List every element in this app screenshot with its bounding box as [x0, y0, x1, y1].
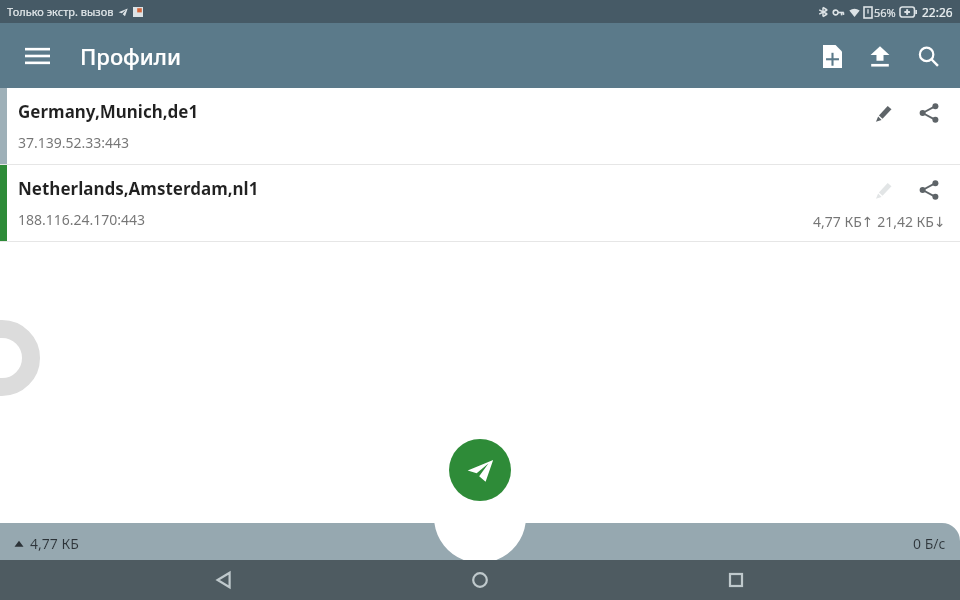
- button[interactable]: Netherlands,Amsterdam,nl1: [0, 165, 960, 241]
- staticText: 22:26: [922, 4, 953, 20]
- staticText: 4,77 КБ↑ 21,42 КБ↓: [813, 212, 946, 231]
- staticText: Профили: [80, 41, 182, 71]
- button[interactable]: Share profile: [906, 167, 952, 213]
- button[interactable]: Connect: [449, 439, 511, 501]
- button[interactable]: Edit profile: [860, 90, 906, 136]
- staticText: Только экстр. вызов: [7, 4, 114, 19]
- staticText: Netherlands,Amsterdam,nl1: [18, 177, 259, 200]
- button[interactable]: Share profile: [906, 90, 952, 136]
- button[interactable]: Edit profile: [860, 167, 906, 213]
- staticText: Germany,Munich,de1: [18, 100, 199, 123]
- button[interactable]: Home: [448, 560, 512, 600]
- staticText: 56%: [874, 5, 896, 20]
- staticText: 0 Б/с: [913, 534, 946, 553]
- staticText: 21,42 КБ: [30, 558, 87, 577]
- staticText: 4,77 КБ: [30, 534, 79, 553]
- staticText: 0 Б/с: [913, 558, 946, 577]
- staticText: Подключено, нажмите для проверки соедине…: [14, 581, 358, 600]
- button[interactable]: Import profile: [856, 32, 904, 80]
- button[interactable]: Recent apps: [704, 560, 768, 600]
- button[interactable]: Germany,Munich,de1: [0, 88, 960, 164]
- button[interactable]: New profile: [808, 32, 856, 80]
- button[interactable]: Back: [192, 560, 256, 600]
- staticText: 37.139.52.33:443: [18, 133, 130, 152]
- button[interactable]: Search: [904, 32, 952, 80]
- button[interactable]: Open navigation menu: [14, 33, 60, 79]
- staticText: 188.116.24.170:443: [18, 210, 146, 229]
